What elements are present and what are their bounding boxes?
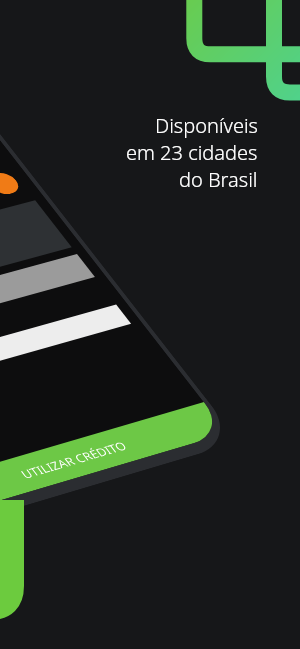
staticText: Disponíveis <box>155 112 258 139</box>
button[interactable]: Ajuda <box>0 170 24 197</box>
staticText: do Brasil <box>179 166 258 193</box>
button[interactable]: UTILIZAR CRÉDITO <box>0 402 228 519</box>
button[interactable] <box>0 254 95 351</box>
staticText: UTILIZAR CRÉDITO <box>17 438 130 482</box>
staticText: em 23 cidades <box>126 139 258 166</box>
